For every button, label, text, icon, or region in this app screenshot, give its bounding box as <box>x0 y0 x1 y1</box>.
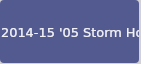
button[interactable]: 2014-15 '05 Storm Hockey <box>0 0 139 63</box>
staticText: 2014-15 '05 Storm Hockey <box>1 25 139 40</box>
